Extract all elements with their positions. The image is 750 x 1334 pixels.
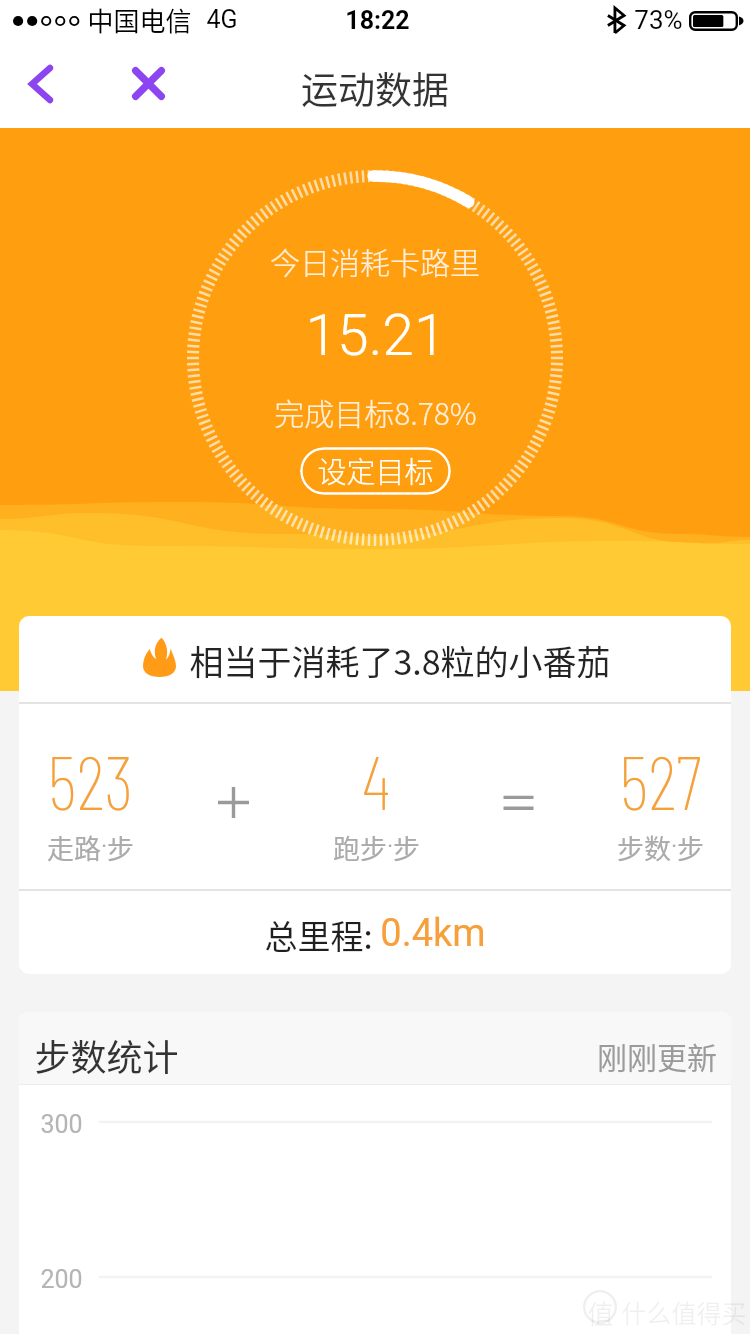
staticText: 刚刚更新 (597, 1034, 717, 1077)
staticText: · (387, 834, 393, 860)
staticText: 步 (393, 828, 420, 867)
staticText: 523 (47, 736, 134, 825)
staticText: 300 (40, 1110, 83, 1139)
staticText: 527 (619, 736, 702, 825)
staticText: 步数 (617, 828, 671, 867)
button[interactable]: Close (119, 54, 177, 112)
staticText: 设定目标 (317, 449, 434, 491)
staticText: 总里程: (264, 911, 373, 959)
staticText: 相当于消耗了3.8粒的小番茄 (189, 636, 611, 685)
staticText: · (671, 834, 677, 860)
staticText: 0.4km (380, 911, 486, 956)
staticText: 15.21 (305, 302, 446, 369)
staticText: 4 (362, 736, 390, 825)
staticText: 4G (206, 5, 238, 34)
button[interactable]: 设定目标 (300, 447, 451, 495)
staticText: 今日消耗卡路里 (270, 239, 480, 282)
staticText: 走路 (47, 828, 101, 867)
staticText: 步 (107, 828, 134, 867)
staticText: 运动数据 (301, 61, 449, 115)
staticText: 200 (40, 1265, 83, 1294)
staticText: 完成目标8.78% (274, 390, 477, 433)
staticText: 73% (634, 5, 683, 35)
staticText: 18:22 (345, 6, 410, 35)
button[interactable]: Back (12, 55, 70, 113)
staticText: · (101, 834, 107, 860)
staticText: 中国电信 (87, 1, 192, 39)
staticText: 什么值得买 (621, 1294, 747, 1330)
staticText: 值 (587, 1294, 614, 1332)
staticText: 步 (677, 828, 704, 867)
staticText: 步数统计 (34, 1029, 179, 1081)
staticText: 跑步 (333, 828, 387, 867)
